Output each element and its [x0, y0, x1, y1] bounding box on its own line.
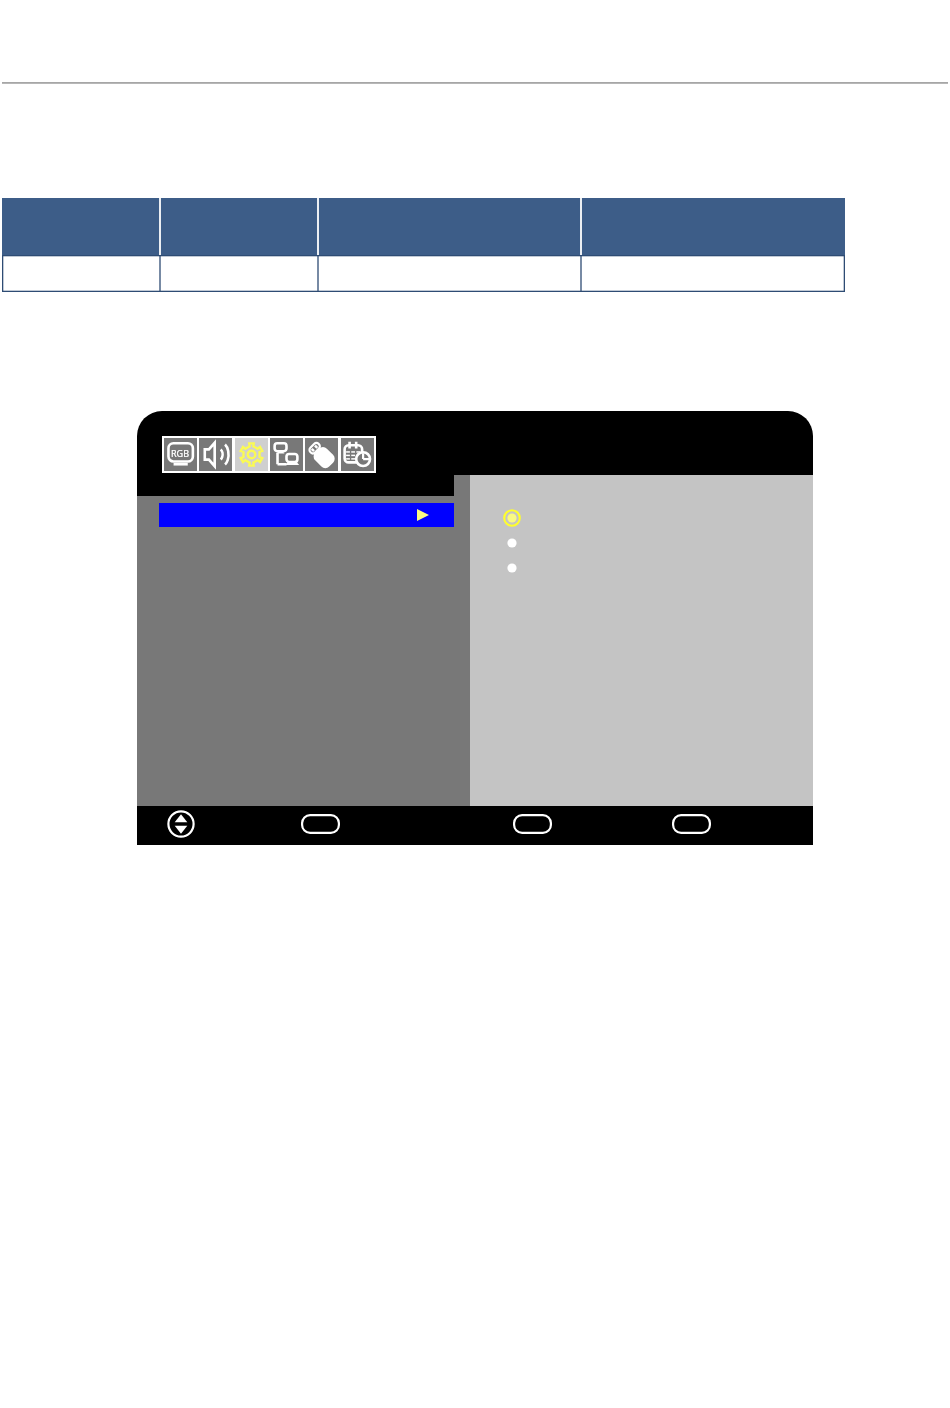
button[interactable]: Schedule	[341, 438, 374, 471]
button[interactable]: USB	[305, 438, 338, 471]
button[interactable]: Picture	[164, 438, 197, 471]
button[interactable]: Settings	[235, 438, 268, 471]
staticText: RGB	[171, 447, 190, 459]
button[interactable]: Key 1	[301, 814, 340, 834]
button[interactable]: Key 3	[672, 814, 711, 834]
button[interactable]: Sound	[199, 438, 232, 471]
button[interactable]: Key 2	[513, 814, 552, 834]
button[interactable]: Navigate up or down	[167, 810, 195, 838]
button[interactable]: Network	[270, 438, 303, 471]
button[interactable]	[159, 503, 454, 527]
